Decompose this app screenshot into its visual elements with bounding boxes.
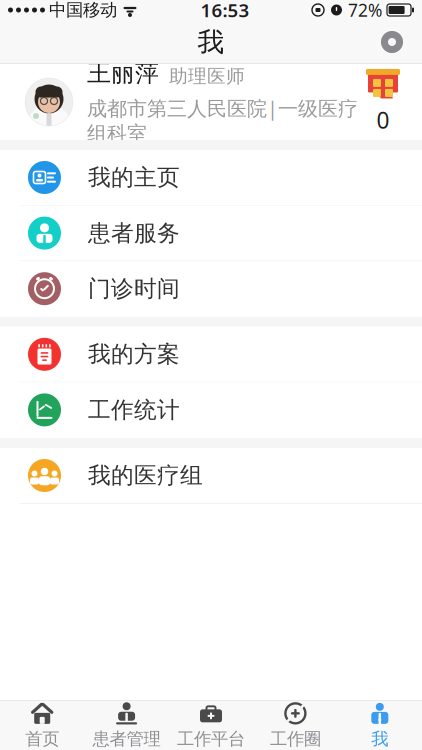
staticText: 我的医疗组 (88, 462, 203, 489)
staticText: 首页 (25, 728, 59, 750)
button[interactable]: 工作圈 (253, 701, 338, 750)
staticText: 门诊时间 (88, 275, 180, 303)
button[interactable]: 工作平台 (169, 701, 253, 750)
button[interactable]: 患者管理 (84, 701, 169, 750)
button[interactable]: 我的医疗组 (0, 448, 422, 504)
staticText: 16:53 (200, 0, 249, 22)
staticText: 王丽萍 (87, 58, 159, 88)
staticText: 我 (371, 728, 388, 750)
staticText: 72% (348, 0, 382, 21)
staticText: 我的主页 (88, 164, 180, 191)
button[interactable]: 患者服务 (0, 206, 422, 261)
staticText: 0 (376, 105, 389, 135)
staticText: 患者服务 (88, 219, 180, 247)
staticText: 我 (197, 26, 224, 58)
staticText: 工作平台 (177, 728, 245, 750)
button[interactable]: 工作统计 (0, 382, 422, 438)
button[interactable]: 我的方案 (0, 327, 422, 382)
button[interactable]: 首页 (0, 701, 84, 750)
staticText: 工作统计 (88, 396, 180, 424)
staticText: 工作圈 (270, 728, 321, 750)
button[interactable]: 我 (338, 701, 422, 750)
staticText: 患者管理 (93, 728, 161, 750)
staticText: 我的方案 (88, 340, 180, 368)
staticText: 中国移动 (49, 0, 117, 21)
button[interactable]: Settings (370, 20, 414, 64)
staticText: 助理医师 (169, 65, 245, 88)
button[interactable]: 王丽萍 (0, 64, 422, 140)
button[interactable]: 我的主页 (0, 150, 422, 206)
staticText: 成都市第三人民医院|一级医疗组科室 (87, 95, 358, 146)
button[interactable]: 门诊时间 (0, 261, 422, 317)
